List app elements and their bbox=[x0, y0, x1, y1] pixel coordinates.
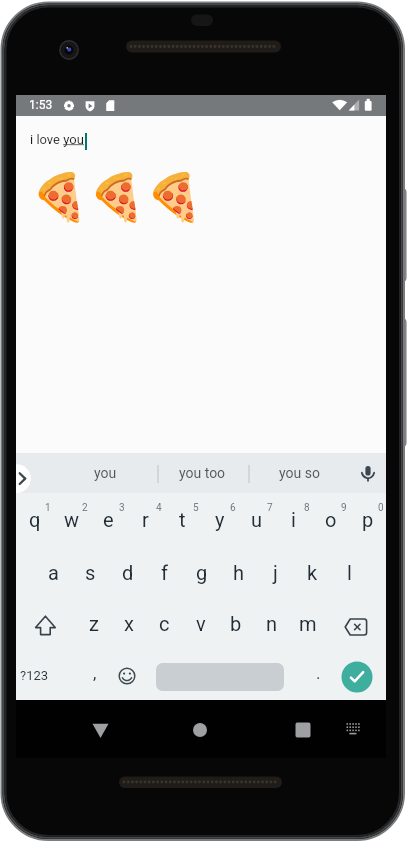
staticText: k bbox=[307, 561, 318, 584]
staticText: o bbox=[325, 508, 337, 531]
staticText: n bbox=[266, 612, 278, 635]
button[interactable] bbox=[76, 706, 124, 754]
staticText: ?123 bbox=[20, 668, 49, 683]
button[interactable]: 5 bbox=[189, 501, 203, 515]
button[interactable]: o bbox=[312, 494, 349, 544]
staticText: 8 bbox=[304, 502, 310, 514]
button[interactable]: you so bbox=[255, 454, 343, 492]
button[interactable]: f bbox=[146, 547, 183, 597]
staticText: j bbox=[273, 561, 278, 584]
button[interactable]: k bbox=[294, 547, 331, 597]
button[interactable]: 4 bbox=[152, 501, 166, 515]
staticText: i bbox=[291, 508, 296, 531]
button[interactable]: y bbox=[201, 494, 238, 544]
button[interactable]: r bbox=[127, 494, 164, 544]
button[interactable]: u bbox=[238, 494, 275, 544]
staticText: d bbox=[122, 561, 134, 584]
button[interactable]: h bbox=[220, 547, 257, 597]
staticText: you too bbox=[179, 465, 226, 481]
button[interactable]: p bbox=[349, 494, 386, 544]
button[interactable] bbox=[336, 599, 376, 649]
staticText: you bbox=[94, 465, 117, 481]
staticText: w bbox=[64, 508, 80, 531]
button[interactable]: , bbox=[80, 649, 110, 697]
button[interactable]: 1 bbox=[41, 501, 55, 515]
button[interactable] bbox=[334, 709, 376, 751]
staticText: g bbox=[196, 561, 208, 584]
button[interactable]: l bbox=[331, 547, 368, 597]
staticText: p bbox=[362, 508, 374, 531]
button[interactable] bbox=[339, 659, 375, 695]
button[interactable]: v bbox=[183, 598, 218, 648]
staticText: 5 bbox=[193, 502, 199, 514]
staticText: r bbox=[142, 508, 149, 531]
staticText: 3 bbox=[119, 502, 125, 514]
staticText: 1 bbox=[45, 502, 51, 514]
staticText: 0 bbox=[378, 502, 384, 514]
button[interactable]: . bbox=[303, 649, 333, 697]
button[interactable] bbox=[16, 116, 386, 453]
staticText: x bbox=[124, 612, 134, 635]
button[interactable]: you bbox=[65, 454, 145, 492]
button[interactable]: 7 bbox=[263, 501, 277, 515]
staticText: 6 bbox=[230, 502, 236, 514]
button[interactable]: x bbox=[111, 598, 146, 648]
staticText: z bbox=[89, 612, 99, 635]
staticText: h bbox=[233, 561, 245, 584]
button[interactable] bbox=[350, 455, 386, 491]
staticText: you so bbox=[279, 465, 320, 481]
staticText: 1:53 bbox=[29, 98, 53, 112]
button[interactable]: 9 bbox=[337, 501, 351, 515]
button[interactable]: 2 bbox=[78, 501, 92, 515]
button[interactable]: i bbox=[275, 494, 312, 544]
button[interactable] bbox=[279, 706, 327, 754]
button[interactable]: q bbox=[16, 494, 53, 544]
button[interactable]: you too bbox=[158, 454, 246, 492]
button[interactable] bbox=[16, 457, 46, 491]
button[interactable]: a bbox=[35, 547, 72, 597]
button[interactable] bbox=[26, 599, 66, 649]
button[interactable]: 0 bbox=[374, 501, 388, 515]
staticText: y bbox=[215, 508, 225, 531]
button[interactable] bbox=[176, 706, 224, 754]
button[interactable]: m bbox=[290, 598, 325, 648]
staticText: 4 bbox=[156, 502, 162, 514]
button[interactable]: g bbox=[183, 547, 220, 597]
button[interactable]: e bbox=[90, 494, 127, 544]
button[interactable]: t bbox=[164, 494, 201, 544]
staticText: 🍕 🍕 🍕 bbox=[31, 164, 197, 227]
staticText: t bbox=[179, 508, 186, 531]
staticText: b bbox=[230, 612, 242, 635]
staticText: s bbox=[85, 561, 96, 584]
button[interactable]: c bbox=[147, 598, 182, 648]
button[interactable]: 3 bbox=[115, 501, 129, 515]
button[interactable]: w bbox=[53, 494, 90, 544]
staticText: m bbox=[299, 612, 317, 635]
button[interactable]: 8 bbox=[300, 501, 314, 515]
staticText: c bbox=[159, 612, 170, 635]
button[interactable]: z bbox=[76, 598, 111, 648]
button[interactable] bbox=[109, 651, 145, 699]
staticText: i love you bbox=[30, 132, 84, 147]
staticText: q bbox=[29, 508, 41, 531]
staticText: e bbox=[103, 508, 114, 531]
button[interactable]: d bbox=[109, 547, 146, 597]
staticText: v bbox=[196, 612, 206, 635]
staticText: u bbox=[251, 508, 263, 531]
staticText: , bbox=[93, 663, 97, 683]
staticText: 2 bbox=[82, 502, 88, 514]
button[interactable]: 6 bbox=[226, 501, 240, 515]
button[interactable]: n bbox=[254, 598, 289, 648]
button[interactable]: ?123 bbox=[16, 651, 52, 699]
button[interactable]: s bbox=[72, 547, 109, 597]
button[interactable]: b bbox=[218, 598, 253, 648]
button[interactable]: j bbox=[257, 547, 294, 597]
staticText: l bbox=[347, 561, 352, 584]
staticText: f bbox=[161, 561, 168, 584]
staticText: a bbox=[48, 561, 59, 584]
staticText: 7 bbox=[267, 502, 273, 514]
staticText: 9 bbox=[341, 502, 347, 514]
staticText: . bbox=[316, 663, 321, 683]
button[interactable] bbox=[156, 651, 284, 699]
